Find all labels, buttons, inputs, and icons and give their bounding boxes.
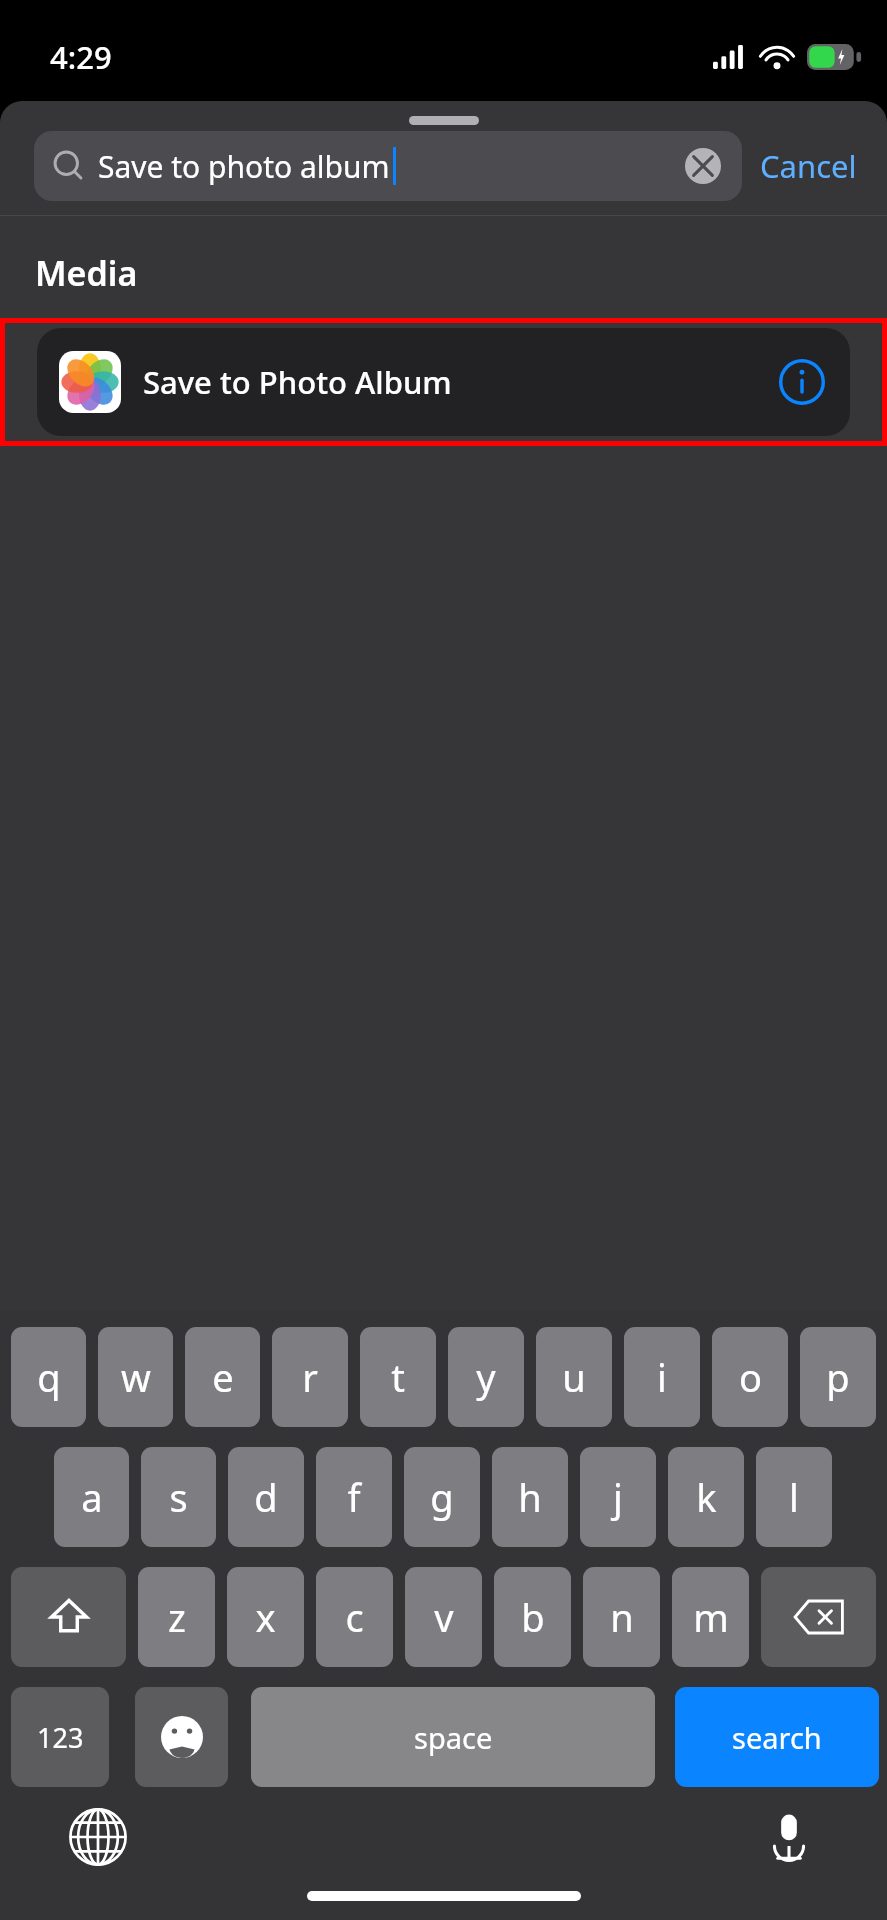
staticText: g xyxy=(430,1471,454,1523)
button[interactable]: o xyxy=(712,1327,788,1427)
button[interactable]: Clear text xyxy=(682,145,724,187)
staticText: q xyxy=(37,1351,61,1403)
staticText: d xyxy=(254,1471,278,1523)
button[interactable]: 123 xyxy=(11,1687,109,1787)
button[interactable]: u xyxy=(536,1327,612,1427)
staticText: a xyxy=(81,1471,103,1523)
staticText: search xyxy=(732,1718,822,1757)
staticText: b xyxy=(521,1591,545,1643)
button[interactable]: Save to Photo Album xyxy=(37,328,850,436)
staticText: f xyxy=(347,1471,361,1523)
button[interactable]: n xyxy=(583,1567,660,1667)
staticText: v xyxy=(434,1591,454,1643)
staticText: e xyxy=(212,1351,234,1403)
button[interactable]: Shift xyxy=(11,1567,126,1667)
button[interactable]: y xyxy=(448,1327,524,1427)
staticText: n xyxy=(610,1591,634,1643)
staticText: r xyxy=(302,1351,318,1403)
button[interactable]: l xyxy=(756,1447,832,1547)
button[interactable]: r xyxy=(272,1327,348,1427)
button[interactable]: g xyxy=(404,1447,480,1547)
button[interactable]: b xyxy=(494,1567,571,1667)
staticText: Cancel xyxy=(760,145,857,187)
button[interactable]: m xyxy=(672,1567,749,1667)
staticText: p xyxy=(826,1351,850,1403)
staticText: l xyxy=(789,1471,799,1523)
staticText: c xyxy=(345,1591,364,1643)
staticText: i xyxy=(657,1351,667,1403)
button[interactable]: d xyxy=(228,1447,304,1547)
button[interactable]: j xyxy=(580,1447,656,1547)
button[interactable]: v xyxy=(405,1567,482,1667)
staticText: z xyxy=(168,1591,186,1643)
staticText: h xyxy=(518,1471,542,1523)
button[interactable]: x xyxy=(227,1567,304,1667)
button[interactable]: Save to photo album xyxy=(34,131,742,201)
staticText: k xyxy=(696,1471,717,1523)
staticText: u xyxy=(562,1351,586,1403)
staticText: j xyxy=(613,1471,623,1523)
button[interactable]: w xyxy=(98,1327,173,1427)
staticText: o xyxy=(739,1351,762,1403)
staticText: 4:29 xyxy=(50,36,112,78)
button[interactable]: s xyxy=(141,1447,216,1547)
staticText: m xyxy=(693,1591,729,1643)
staticText: Save to Photo Album xyxy=(143,361,452,403)
button[interactable]: e xyxy=(185,1327,260,1427)
staticText: s xyxy=(169,1471,188,1523)
staticText: Media xyxy=(35,250,138,296)
button[interactable]: Emoji xyxy=(135,1687,228,1787)
staticText: y xyxy=(476,1351,496,1403)
button[interactable]: h xyxy=(492,1447,568,1547)
staticText: Save to photo album xyxy=(98,146,390,187)
button[interactable]: More info xyxy=(776,356,828,408)
button[interactable]: f xyxy=(316,1447,392,1547)
button[interactable]: Change keyboard language xyxy=(62,1801,134,1873)
staticText: x xyxy=(255,1591,276,1643)
button[interactable]: t xyxy=(360,1327,436,1427)
button[interactable]: c xyxy=(316,1567,393,1667)
button[interactable]: q xyxy=(11,1327,86,1427)
button[interactable]: i xyxy=(624,1327,700,1427)
button[interactable]: k xyxy=(668,1447,744,1547)
button[interactable]: Dictation xyxy=(753,1801,825,1873)
button[interactable]: Cancel xyxy=(742,135,861,197)
staticText: t xyxy=(391,1351,405,1403)
staticText: w xyxy=(121,1351,151,1403)
staticText: 123 xyxy=(37,1719,84,1756)
button[interactable]: Backspace xyxy=(761,1567,876,1667)
staticText: space xyxy=(414,1718,493,1757)
button[interactable]: a xyxy=(54,1447,129,1547)
button[interactable]: search xyxy=(675,1687,879,1787)
button[interactable]: p xyxy=(800,1327,876,1427)
button[interactable]: space xyxy=(251,1687,655,1787)
button[interactable]: z xyxy=(138,1567,215,1667)
